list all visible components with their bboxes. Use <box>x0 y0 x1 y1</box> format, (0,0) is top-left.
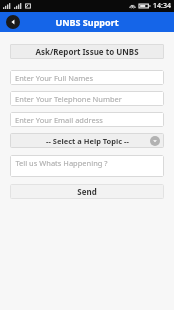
staticText: 14:34 <box>153 1 171 11</box>
button[interactable]: Enter Your Telephone Number <box>10 91 164 106</box>
staticText: Enter Your Email address <box>15 115 103 125</box>
button[interactable]: Ask/Report Issue to UNBS <box>10 44 164 59</box>
button[interactable]: Enter Your Full Names <box>10 70 164 85</box>
staticText: Enter Your Telephone Number <box>15 94 122 104</box>
staticText: Ask/Report Issue to UNBS <box>35 46 139 57</box>
staticText: UNBS Support <box>55 16 119 28</box>
staticText: Tell us Whats Happening ? <box>15 158 108 168</box>
staticText: Enter Your Full Names <box>15 73 93 83</box>
button[interactable]: Back <box>6 15 20 29</box>
button[interactable]: Enter Your Email address <box>10 112 164 127</box>
button[interactable]: Tell us Whats Happening ? <box>10 155 164 177</box>
button[interactable]: -- Select a Help Topic -- <box>10 133 164 148</box>
staticText: Send <box>77 186 97 197</box>
staticText: -- Select a Help Topic -- <box>46 136 129 146</box>
button[interactable]: Send <box>10 184 164 199</box>
